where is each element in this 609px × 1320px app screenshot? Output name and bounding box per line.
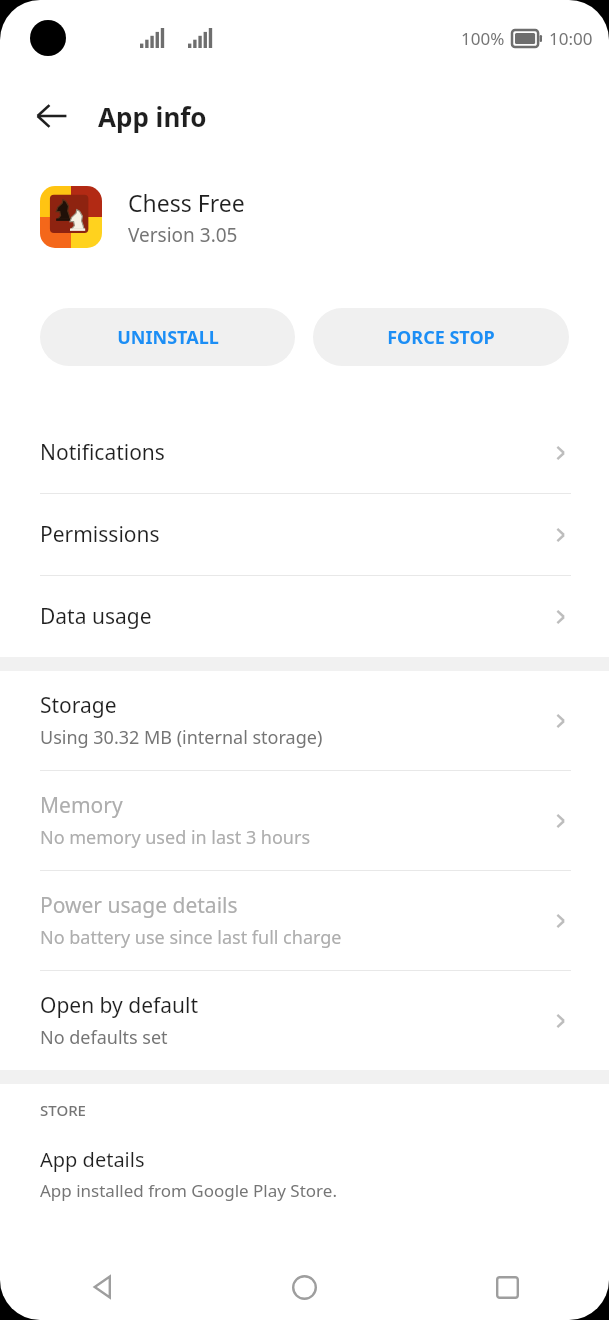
staticText: No battery use since last full charge	[40, 925, 342, 950]
button[interactable]: Back	[24, 88, 80, 144]
button[interactable]: FORCE STOP	[313, 308, 569, 366]
staticText: Version 3.05	[128, 222, 238, 248]
button[interactable]: Data usage	[0, 576, 609, 657]
button[interactable]: Notifications	[0, 412, 609, 493]
staticText: 100%	[461, 27, 505, 50]
button[interactable]: Back	[0, 1254, 203, 1320]
staticText: Data usage	[40, 602, 549, 631]
staticText: UNINSTALL	[117, 325, 219, 350]
button[interactable]: Memory	[0, 771, 609, 870]
button[interactable]: Home	[203, 1254, 406, 1320]
staticText: FORCE STOP	[387, 325, 495, 350]
staticText: STORE	[40, 1100, 86, 1120]
button[interactable]: UNINSTALL	[40, 308, 295, 366]
staticText: No defaults set	[40, 1025, 168, 1050]
staticText: App info	[98, 99, 207, 134]
staticText: 10:00	[549, 27, 593, 50]
button[interactable]: Storage	[0, 671, 609, 770]
staticText: Notifications	[40, 438, 549, 467]
button[interactable]: Permissions	[0, 494, 609, 575]
staticText: Memory	[40, 791, 123, 820]
staticText: Open by default	[40, 991, 199, 1020]
button[interactable]: Power usage details	[0, 871, 609, 970]
staticText: Power usage details	[40, 891, 238, 920]
button[interactable]: Open by default	[0, 971, 609, 1070]
staticText: App installed from Google Play Store.	[40, 1179, 337, 1202]
button[interactable]: Recent apps	[406, 1254, 609, 1320]
staticText: Permissions	[40, 520, 549, 549]
staticText: Chess Free	[128, 187, 245, 218]
staticText: Storage	[40, 691, 117, 720]
staticText: Using 30.32 MB (internal storage)	[40, 725, 323, 750]
staticText: No memory used in last 3 hours	[40, 825, 311, 850]
staticText: App details	[40, 1146, 145, 1173]
